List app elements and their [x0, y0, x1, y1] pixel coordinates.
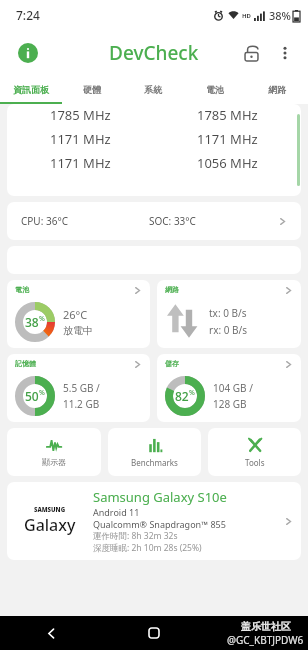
button[interactable]: 1785 MHz [7, 104, 301, 196]
button[interactable]: 資訊面板 [0, 76, 61, 102]
staticText: Benchmarks [131, 457, 178, 468]
staticText: 104 GB / [213, 381, 253, 395]
staticText: 硬體 [83, 84, 101, 95]
button[interactable]: 網路 [157, 280, 301, 348]
button[interactable]: 網路 [246, 76, 308, 102]
button[interactable]: 儲存 [157, 354, 301, 422]
staticText: 5.5 GB / [63, 381, 100, 395]
staticText: Qualcomm® Snapdragon™ 855 [93, 518, 226, 530]
staticText: 1785 MHz [50, 106, 111, 124]
button[interactable]: Benchmarks [108, 428, 201, 476]
staticText: Android 11 [93, 506, 140, 518]
staticText: Samsung Galaxy S10e [93, 488, 227, 506]
staticText: 深度睡眠: 2h 10m 28s (25%) [93, 542, 202, 554]
staticText: 1785 MHz [197, 106, 258, 124]
staticText: 38 [25, 314, 39, 330]
staticText: 電池 [206, 84, 224, 95]
staticText: 11.2 GB [63, 397, 100, 411]
button[interactable]: 電池 [184, 76, 246, 102]
button[interactable]: 記憶體 [7, 354, 150, 422]
staticText: 38% [269, 8, 291, 23]
staticText: % [189, 388, 195, 398]
button[interactable]: Tools [208, 428, 301, 476]
button[interactable]: More options [268, 36, 302, 70]
staticText: SAMSUNG [34, 506, 66, 514]
staticText: 網路 [268, 84, 286, 95]
staticText: 運作時間: 8h 32m 32s [93, 530, 178, 542]
button[interactable]: 硬體 [61, 76, 122, 102]
staticText: 資訊面板 [13, 84, 49, 95]
button[interactable]: 電池 [7, 280, 150, 348]
staticText: 記憶體 [15, 359, 36, 368]
staticText: 82 [175, 388, 189, 404]
staticText: rx: 0 B/s [209, 323, 248, 337]
staticText: CPU: 36°C [21, 214, 68, 228]
staticText: SOC: 33°C [149, 214, 196, 228]
staticText: % [39, 388, 45, 398]
staticText: 放電中 [63, 324, 93, 337]
staticText: 50 [25, 388, 39, 404]
staticText: @GC_KBTJPDW6 [227, 633, 304, 647]
staticText: 儲存 [165, 359, 179, 368]
staticText: 網路 [165, 285, 179, 294]
button[interactable]: Home [103, 616, 205, 650]
staticText: 1171 MHz [50, 130, 111, 148]
staticText: 盖乐世社区 [241, 620, 291, 633]
staticText: DevCheck [109, 40, 199, 66]
staticText: 電池 [15, 285, 29, 294]
staticText: 1056 MHz [197, 154, 258, 172]
staticText: 128 GB [213, 397, 247, 411]
staticText: 26°C [63, 307, 88, 322]
staticText: 系統 [144, 84, 162, 95]
staticText: % [39, 314, 45, 324]
staticText: tx: 0 B/s [209, 306, 247, 320]
button[interactable]: CPU: 36°C [7, 202, 301, 240]
button[interactable]: Info [12, 37, 44, 69]
staticText: 1171 MHz [197, 130, 258, 148]
staticText: 顯示器 [42, 457, 66, 467]
staticText: HD [242, 12, 251, 20]
button[interactable]: 系統 [122, 76, 184, 102]
staticText: Galaxy [24, 514, 76, 536]
staticText: Tools [245, 457, 265, 468]
button[interactable]: Unlock [234, 36, 268, 70]
staticText: 7:24 [16, 7, 40, 23]
button[interactable]: Back [0, 616, 102, 650]
button[interactable]: SAMSUNG [7, 482, 301, 560]
button[interactable]: 顯示器 [7, 428, 101, 476]
staticText: 1171 MHz [50, 154, 111, 172]
